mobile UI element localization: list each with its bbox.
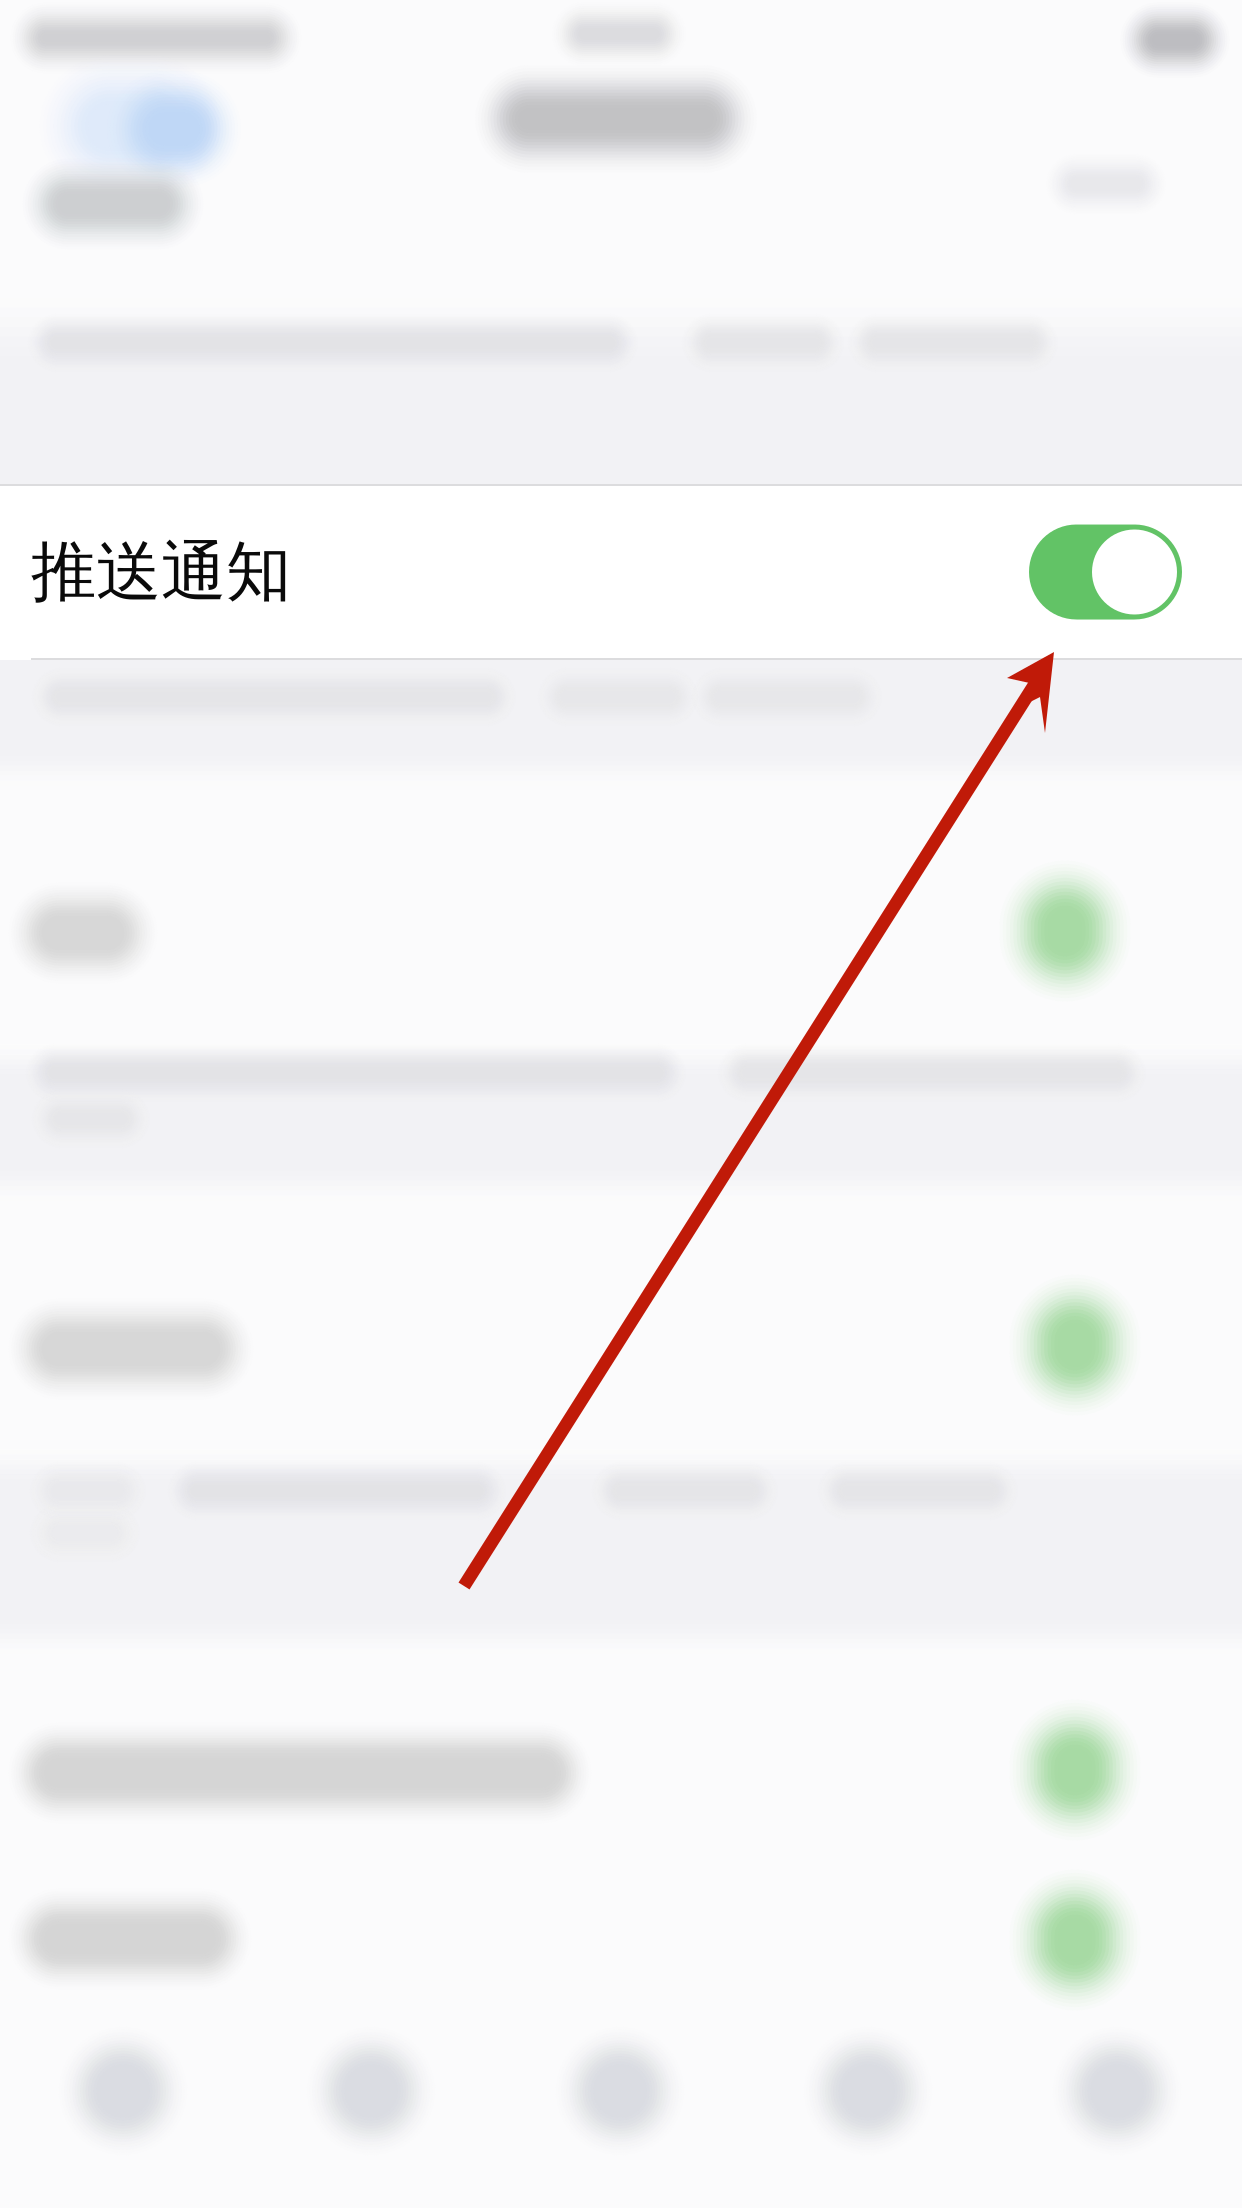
staticText: 推送通知 [31, 532, 291, 612]
button[interactable]: 推送通知 [0, 486, 1242, 658]
